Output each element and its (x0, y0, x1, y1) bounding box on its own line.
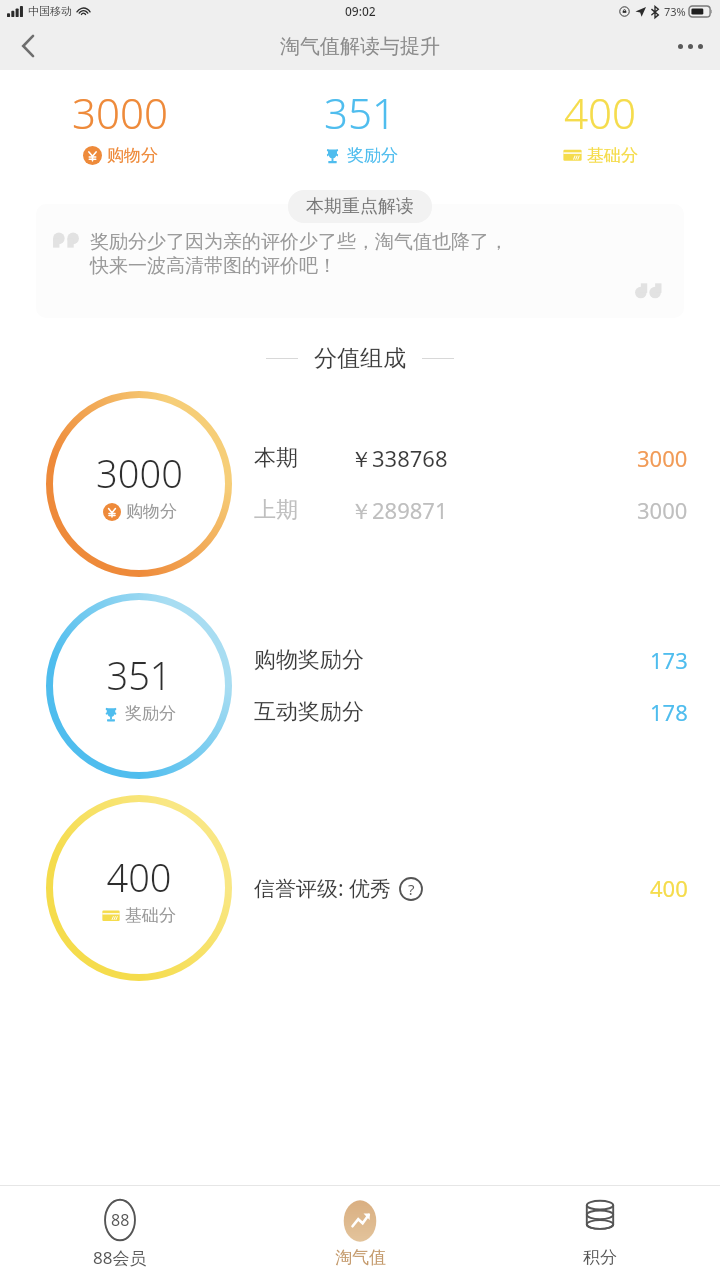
staticText: 3000 (637, 495, 688, 525)
staticText: ? (408, 879, 415, 899)
button[interactable]: Back (0, 22, 56, 70)
staticText: 351 (324, 84, 396, 141)
staticText: 73% (664, 4, 686, 19)
staticText: 3000 (96, 447, 183, 499)
staticText: 分值组成 (314, 344, 406, 373)
staticText: 88会员 (93, 1246, 147, 1269)
button[interactable]: 本期 (254, 443, 688, 473)
staticText: 400 (106, 851, 172, 903)
button[interactable]: 本期重点解读 (288, 190, 432, 223)
button[interactable]: 互动奖励分 (254, 697, 688, 727)
button[interactable]: 信誉评级: 优秀 (254, 874, 650, 903)
staticText: 本期重点解读 (306, 195, 414, 218)
staticText: 88 (111, 1209, 130, 1231)
staticText: 400 (650, 873, 688, 903)
button[interactable]: 3000 (0, 84, 240, 166)
button[interactable]: 奖励分少了因为亲的评价少了些，淘气值也降了， (36, 204, 684, 318)
staticText: 3000 (637, 443, 688, 473)
staticText: 基础分 (587, 145, 638, 166)
button[interactable]: 351 (240, 84, 480, 166)
staticText: 购物分 (126, 501, 177, 522)
staticText: 淘气值 (335, 1247, 386, 1268)
staticText: 淘气值解读与提升 (280, 34, 440, 59)
staticText: 购物分 (107, 145, 158, 166)
button[interactable]: 上期 (254, 495, 688, 525)
staticText: 基础分 (125, 905, 176, 926)
staticText: 400 (564, 84, 636, 141)
staticText: 奖励分 (125, 703, 176, 724)
staticText: 351 (106, 649, 172, 701)
staticText: 178 (650, 697, 688, 727)
staticText: 奖励分 (347, 145, 398, 166)
staticText: 信誉评级: 优秀 (254, 874, 392, 903)
staticText: 奖励分少了因为亲的评价少了些，淘气值也降了， (90, 230, 508, 254)
button[interactable]: 淘气值 (240, 1186, 480, 1281)
other: Help (399, 877, 423, 901)
staticText: 积分 (583, 1247, 617, 1268)
staticText: 3000 (72, 84, 168, 141)
button[interactable]: More options (660, 22, 720, 70)
staticText: 上期 (254, 496, 350, 524)
staticText: ￥338768 (350, 443, 637, 473)
staticText: ￥289871 (350, 495, 637, 525)
staticText: 中国移动 (28, 4, 72, 18)
button[interactable]: 积分 (480, 1186, 720, 1281)
staticText: 本期 (254, 444, 350, 472)
button[interactable]: 购物奖励分 (254, 645, 688, 675)
staticText: 173 (650, 645, 688, 675)
staticText: 09:02 (345, 3, 376, 19)
button[interactable]: 400 (480, 84, 720, 166)
staticText: 购物奖励分 (254, 646, 650, 674)
button[interactable]: 88 (0, 1186, 240, 1281)
staticText: 快来一波高清带图的评价吧！ (90, 254, 337, 278)
staticText: 互动奖励分 (254, 698, 650, 726)
